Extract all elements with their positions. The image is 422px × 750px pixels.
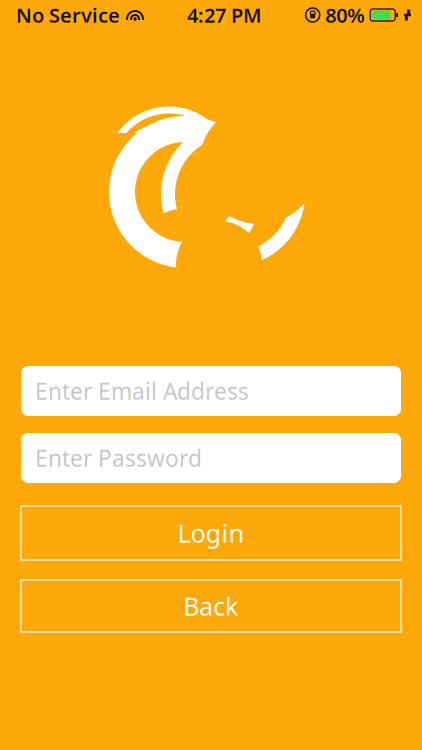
staticText: Enter Password xyxy=(35,443,202,473)
staticText: 4:27 PM xyxy=(187,2,262,28)
button[interactable]: Enter Email Address xyxy=(21,366,401,416)
staticText: No Service xyxy=(16,2,120,28)
button[interactable]: Login xyxy=(21,506,401,560)
staticText: 80% xyxy=(325,2,365,28)
staticText: Login xyxy=(177,516,244,550)
staticText: Enter Email Address xyxy=(35,376,249,406)
staticText: Back xyxy=(183,589,239,623)
button[interactable]: Enter Password xyxy=(21,433,401,483)
button[interactable]: Back xyxy=(21,580,401,632)
